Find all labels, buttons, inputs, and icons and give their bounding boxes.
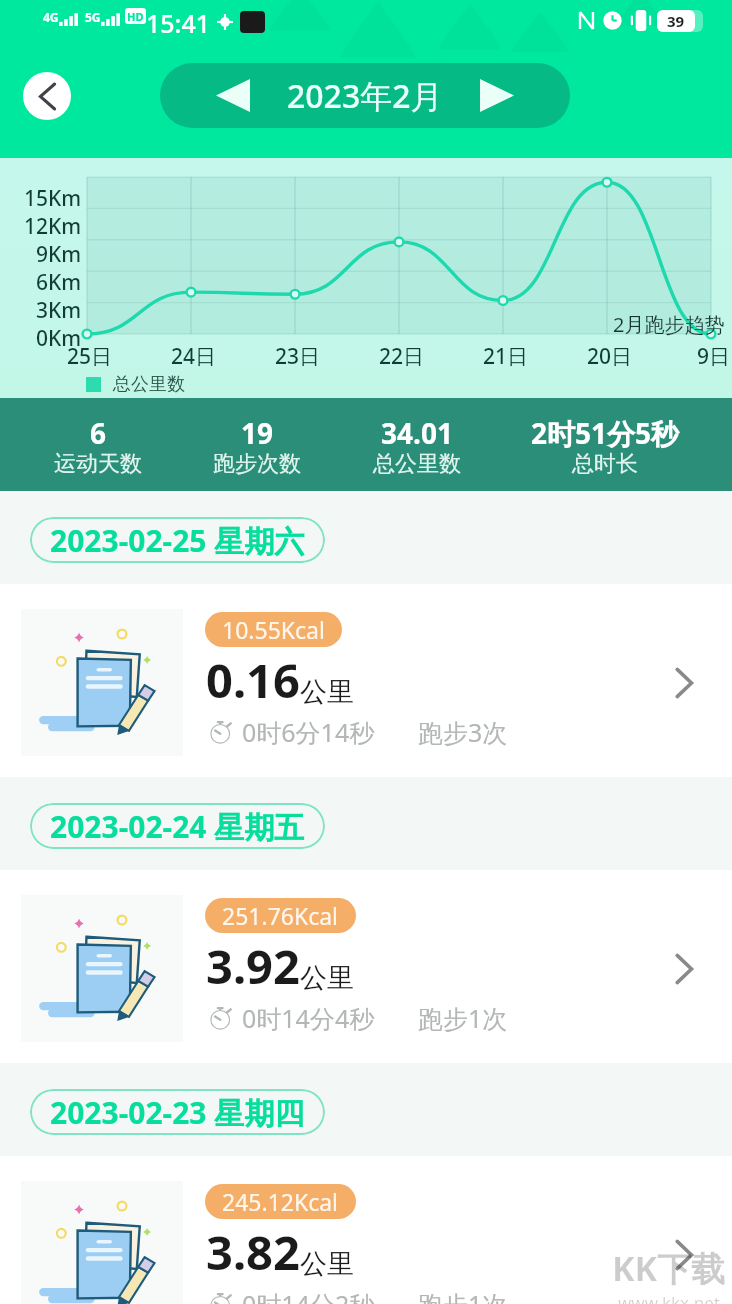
staticText: 2023-02-24 星期五 bbox=[50, 806, 305, 847]
staticText: 19 bbox=[241, 414, 274, 452]
staticText: 0Km bbox=[36, 324, 82, 353]
staticText: 4G bbox=[43, 9, 59, 25]
button[interactable]: Back bbox=[23, 72, 71, 120]
staticText: 0时14分2秒 bbox=[242, 1287, 375, 1304]
button[interactable]: 2023-02-25 星期六 bbox=[50, 517, 305, 563]
staticText: 2023年2月 bbox=[287, 74, 443, 118]
button[interactable]: Next month bbox=[453, 63, 540, 128]
staticText: 2时51分5秒 bbox=[531, 414, 680, 452]
staticText: 跑步1次 bbox=[418, 1287, 508, 1304]
staticText: 总公里数 bbox=[113, 373, 185, 396]
staticText: 9日 bbox=[697, 342, 731, 371]
staticText: 25日 bbox=[67, 342, 113, 371]
staticText: 总公里数 bbox=[373, 450, 461, 478]
staticText: 跑步次数 bbox=[213, 450, 301, 478]
staticText: 0时14分4秒 bbox=[242, 1001, 375, 1035]
staticText: 跑步1次 bbox=[418, 1001, 508, 1035]
staticText: 15:41 bbox=[146, 6, 211, 40]
staticText: 运动天数 bbox=[54, 450, 142, 478]
staticText: 公里 bbox=[300, 675, 354, 709]
staticText: 23日 bbox=[275, 342, 321, 371]
staticText: 21日 bbox=[483, 342, 529, 371]
staticText: KK下载 bbox=[612, 1245, 726, 1291]
button[interactable]: 2023-02-24 星期五 bbox=[50, 803, 305, 849]
staticText: 3.92 bbox=[206, 934, 300, 998]
staticText: www.kkx.net bbox=[618, 1291, 720, 1304]
staticText: 2月跑步趋势 bbox=[613, 311, 725, 338]
staticText: 公里 bbox=[300, 1247, 354, 1281]
staticText: 12Km bbox=[24, 212, 82, 241]
staticText: 0.16 bbox=[206, 648, 300, 712]
staticText: 6 bbox=[90, 414, 107, 452]
staticText: 3Km bbox=[36, 296, 82, 325]
staticText: HD bbox=[127, 9, 144, 24]
staticText: 10.55Kcal bbox=[222, 614, 325, 645]
staticText: 9Km bbox=[36, 240, 82, 269]
staticText: 公里 bbox=[300, 961, 354, 995]
staticText: 251.76Kcal bbox=[222, 900, 339, 931]
staticText: 20日 bbox=[587, 342, 633, 371]
staticText: 22日 bbox=[379, 342, 425, 371]
staticText: 跑步3次 bbox=[418, 715, 508, 749]
button[interactable]: 2023-02-23 星期四 bbox=[50, 1089, 305, 1135]
staticText: 总时长 bbox=[572, 450, 638, 478]
staticText: 245.12Kcal bbox=[222, 1186, 339, 1217]
staticText: 5G bbox=[85, 9, 101, 25]
staticText: 0时6分14秒 bbox=[242, 715, 375, 749]
staticText: 2023-02-25 星期六 bbox=[50, 520, 305, 561]
staticText: 3.82 bbox=[206, 1220, 300, 1284]
staticText: 6Km bbox=[36, 268, 82, 297]
button[interactable]: 10.55Kcal bbox=[0, 584, 732, 777]
staticText: 15Km bbox=[24, 184, 82, 213]
button[interactable]: Previous month bbox=[189, 63, 276, 128]
staticText: 39 bbox=[667, 11, 685, 31]
staticText: 24日 bbox=[171, 342, 217, 371]
button[interactable]: 251.76Kcal bbox=[0, 870, 732, 1063]
staticText: 2023-02-23 星期四 bbox=[50, 1092, 305, 1133]
staticText: 34.01 bbox=[381, 414, 453, 452]
button[interactable]: 245.12Kcal bbox=[0, 1156, 732, 1304]
